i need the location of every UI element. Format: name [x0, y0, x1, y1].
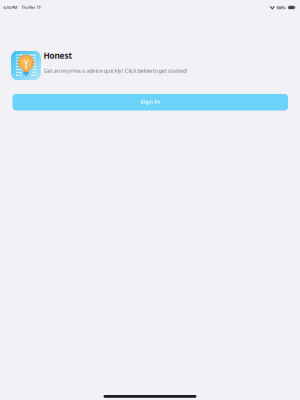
staticText: Honest	[43, 50, 72, 61]
staticText: Get anonymous advice quickly! Click belo…	[43, 67, 187, 74]
staticText: Thu Mar 19	[22, 5, 41, 10]
staticText: Sign In	[140, 98, 160, 105]
staticText: 6:16 PM	[4, 5, 18, 10]
staticText: 100%	[276, 5, 286, 10]
button[interactable]: Sign In	[12, 94, 288, 110]
